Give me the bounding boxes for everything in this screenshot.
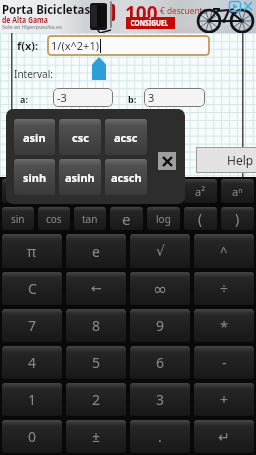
staticText: ← xyxy=(91,281,102,296)
staticText: - xyxy=(222,353,227,372)
staticText: 7 xyxy=(28,316,37,335)
staticText: 0 xyxy=(28,427,37,446)
button[interactable]: + xyxy=(194,383,254,416)
staticText: CONSÍGUELO xyxy=(130,17,171,29)
button[interactable]: 1 xyxy=(2,383,62,416)
button[interactable]: 5 xyxy=(66,346,126,379)
button[interactable]: -3 xyxy=(53,88,113,107)
button[interactable]: 4 xyxy=(2,346,62,379)
staticText: log xyxy=(156,212,171,226)
button[interactable]: ← xyxy=(66,272,126,305)
button[interactable]: 0 xyxy=(2,420,62,453)
staticText: sin xyxy=(11,212,25,226)
button[interactable]: ↵ xyxy=(194,420,254,453)
staticText: a: xyxy=(20,93,28,105)
button[interactable]: asin xyxy=(14,119,55,155)
staticText: acsch xyxy=(111,170,142,185)
button[interactable]: a² xyxy=(184,179,217,203)
staticText: ↵ xyxy=(218,429,230,445)
staticText: ÷ xyxy=(220,279,229,298)
button[interactable]: ∞ xyxy=(130,272,190,305)
staticText: ± xyxy=(92,427,101,446)
staticText: e xyxy=(122,209,131,229)
staticText: 5 xyxy=(92,353,101,372)
button[interactable]: ) xyxy=(221,207,254,230)
staticText: sinh xyxy=(23,170,47,185)
staticText: € descuento xyxy=(160,4,208,16)
button[interactable]: √ xyxy=(130,234,190,268)
staticText: ^ xyxy=(220,242,228,260)
button[interactable] xyxy=(2,179,34,203)
button[interactable]: acsc xyxy=(105,119,147,155)
button[interactable]: * xyxy=(194,309,254,342)
button[interactable]: tan xyxy=(74,207,106,230)
staticText: 9 xyxy=(156,316,165,335)
staticText: asinh xyxy=(65,170,95,185)
staticText: b: xyxy=(128,93,137,105)
staticText: Help xyxy=(227,152,254,168)
staticText: aⁿ xyxy=(232,184,243,199)
staticText: 1 xyxy=(28,390,37,409)
staticText: 4 xyxy=(28,353,37,372)
button[interactable]: asinh xyxy=(59,159,101,195)
button[interactable]: π xyxy=(2,234,62,268)
button[interactable]: cos xyxy=(38,207,70,230)
staticText: -3 xyxy=(57,90,67,105)
button[interactable] xyxy=(38,179,70,203)
button[interactable]: ÷ xyxy=(194,272,254,305)
button[interactable]: 9 xyxy=(130,309,190,342)
button[interactable]: . xyxy=(130,420,190,453)
staticText: . xyxy=(158,427,162,446)
staticText: e xyxy=(92,242,100,261)
staticText: acsc xyxy=(114,130,138,145)
button[interactable]: csc xyxy=(59,119,101,155)
button[interactable]: 3 xyxy=(144,88,205,107)
staticText: ) xyxy=(235,209,240,228)
button[interactable] xyxy=(74,179,106,203)
staticText: a² xyxy=(195,184,206,199)
staticText: Solo en Hiperpuncho.es xyxy=(2,23,62,31)
button[interactable]: sin xyxy=(2,207,34,230)
staticText: Porta Bicicletas xyxy=(2,0,91,18)
button[interactable]: - xyxy=(194,346,254,379)
button[interactable]: Close xyxy=(158,152,176,170)
staticText: cos xyxy=(46,212,62,226)
button[interactable] xyxy=(110,179,143,203)
button[interactable]: Porta Bicicletas xyxy=(0,0,256,33)
button[interactable]: sinh xyxy=(14,159,55,195)
button[interactable]: log xyxy=(147,207,180,230)
staticText: √ xyxy=(156,243,165,259)
button[interactable]: ( xyxy=(184,207,217,230)
button[interactable]: e xyxy=(110,207,143,230)
staticText: 100 xyxy=(125,0,158,26)
button[interactable]: acsch xyxy=(105,159,147,195)
button[interactable]: ± xyxy=(66,420,126,453)
staticText: ( xyxy=(198,209,203,228)
staticText: C xyxy=(28,279,37,298)
staticText: + xyxy=(220,390,229,409)
button[interactable]: 7 xyxy=(2,309,62,342)
staticText: de Alta Gama xyxy=(2,14,48,25)
button[interactable]: ^ xyxy=(194,234,254,268)
button[interactable]: e xyxy=(66,234,126,268)
button[interactable]: C xyxy=(2,272,62,305)
staticText: csc xyxy=(72,130,89,145)
staticText: 6 xyxy=(156,353,165,372)
button[interactable]: 6 xyxy=(130,346,190,379)
button[interactable]: 2 xyxy=(66,383,126,416)
staticText: f(x): xyxy=(17,38,39,53)
button[interactable]: Help xyxy=(196,147,256,173)
staticText: 3 xyxy=(148,90,155,105)
staticText: 2 xyxy=(92,390,101,409)
staticText: asin xyxy=(23,130,46,145)
staticText: Interval: xyxy=(14,67,53,81)
staticText: 3 xyxy=(156,390,165,409)
staticText: * xyxy=(220,316,229,336)
button[interactable]: aⁿ xyxy=(221,179,254,203)
staticText: 8 xyxy=(92,316,101,335)
staticText: ∞ xyxy=(153,279,168,299)
button[interactable]: 8 xyxy=(66,309,126,342)
button[interactable]: 1/(x^2+1) xyxy=(47,35,210,56)
button[interactable]: 3 xyxy=(130,383,190,416)
